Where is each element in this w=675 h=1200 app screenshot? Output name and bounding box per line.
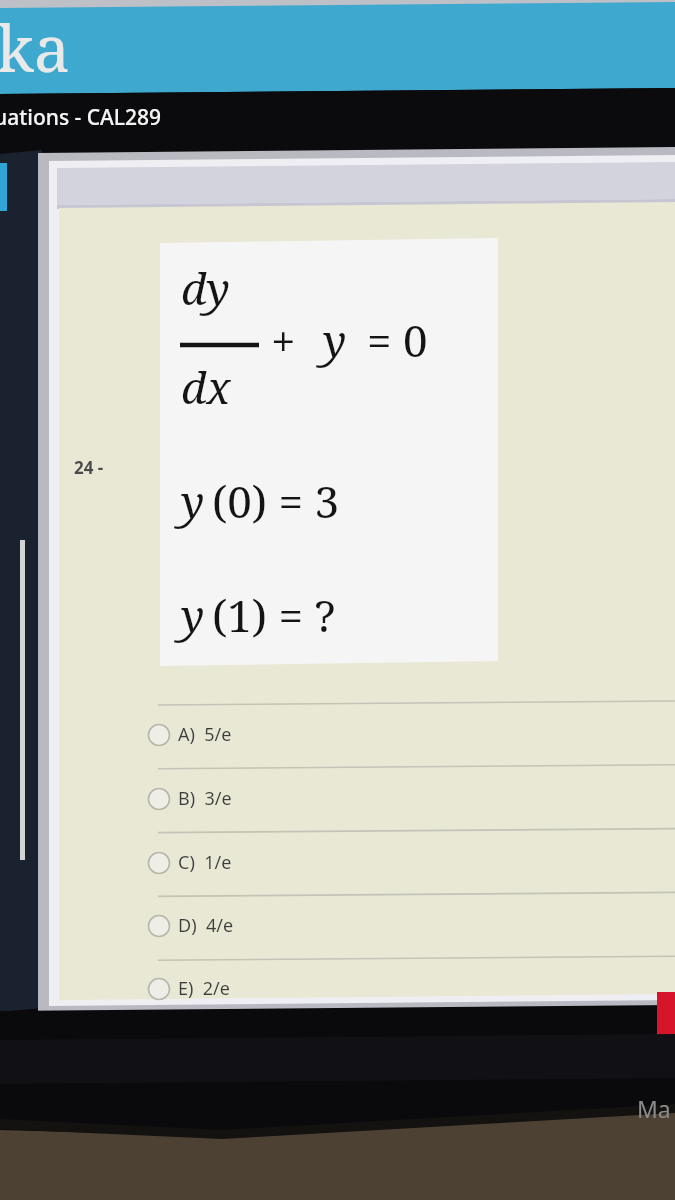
button[interactable]: Answer D 4/e <box>145 898 545 956</box>
button[interactable]: Answer A 5/e <box>145 707 545 765</box>
button[interactable]: Answer B 3/e <box>145 771 545 829</box>
button[interactable]: Answer C 1/e <box>145 835 545 893</box>
button[interactable]: Answer E 2/e <box>145 961 545 1019</box>
